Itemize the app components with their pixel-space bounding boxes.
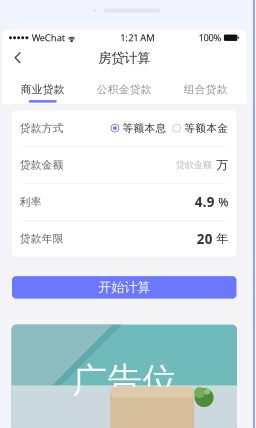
staticText: 利率: [20, 195, 42, 208]
staticText: 4.9: [195, 193, 215, 211]
button[interactable]: 公积金贷款: [83, 70, 165, 104]
staticText: 贷款金额: [176, 159, 212, 171]
staticText: 公积金贷款: [97, 83, 152, 96]
staticText: 100%: [198, 32, 221, 44]
staticText: 贷款年限: [20, 232, 64, 245]
button[interactable]: Back: [6, 46, 30, 70]
staticText: 1:21 AM: [120, 32, 154, 44]
staticText: 年: [216, 231, 228, 246]
staticText: 商业贷款: [21, 83, 65, 96]
staticText: 万: [216, 158, 228, 172]
staticText: 等额本金: [184, 121, 228, 135]
staticText: 开始计算: [98, 279, 150, 296]
staticText: 广告位: [73, 359, 178, 402]
staticText: %: [218, 194, 228, 210]
button[interactable]: 开始计算: [12, 276, 236, 299]
staticText: 贷款金额: [20, 158, 64, 171]
staticText: WeChat: [32, 32, 65, 44]
staticText: 等额本息: [123, 121, 167, 135]
staticText: 20: [197, 230, 213, 248]
staticText: 贷款方式: [20, 121, 64, 135]
staticText: 组合贷款: [184, 83, 228, 96]
button[interactable]: 组合贷款: [165, 70, 246, 104]
staticText: 房贷计算: [98, 50, 150, 66]
button[interactable]: 等额本息: [110, 121, 167, 135]
button[interactable]: 商业贷款: [2, 70, 83, 104]
button[interactable]: 等额本金: [172, 121, 228, 135]
